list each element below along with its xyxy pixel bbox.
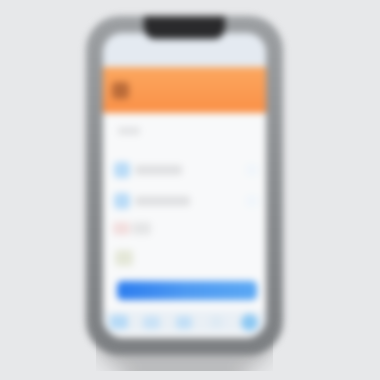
button[interactable]: Profile: [241, 314, 258, 331]
button[interactable]: Search: [143, 316, 160, 329]
button[interactable]: [103, 162, 266, 178]
button[interactable]: [117, 281, 257, 300]
button[interactable]: [103, 193, 266, 209]
button[interactable]: Home: [110, 315, 128, 329]
other: Menu: [112, 82, 129, 99]
button[interactable]: [113, 222, 151, 235]
button[interactable]: Activity: [176, 316, 192, 329]
button[interactable]: Menu: [103, 67, 266, 113]
button[interactable]: [115, 250, 133, 266]
